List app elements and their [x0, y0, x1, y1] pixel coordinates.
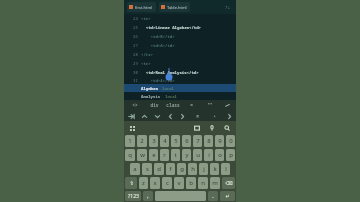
staticText: ▾ — [213, 113, 216, 119]
staticText: 7↓ — [225, 5, 231, 10]
button[interactable]: Algebra — [124, 84, 236, 92]
button[interactable]: <> — [127, 100, 143, 110]
button[interactable]: m — [210, 177, 220, 189]
button[interactable]: n — [198, 177, 208, 189]
button[interactable]: Shift — [125, 177, 137, 189]
button[interactable]: Period — [208, 191, 218, 201]
button[interactable]: Down — [151, 111, 163, 121]
staticText: <td>Real Analysis</td> — [141, 70, 199, 75]
staticText: </tr> — [141, 52, 153, 57]
staticText: 0 — [229, 137, 233, 145]
button[interactable]: v — [174, 177, 184, 189]
button[interactable]: Stickers — [192, 123, 201, 132]
staticText: 26 — [133, 34, 138, 39]
button[interactable]: t — [171, 149, 180, 161]
button[interactable]: 7 — [193, 135, 202, 147]
button[interactable]: Keyboard menu — [128, 124, 136, 132]
button[interactable]: 8 — [204, 135, 213, 147]
button[interactable]: More — [222, 1, 234, 13]
button[interactable]: a — [130, 163, 140, 175]
staticText: <tr> — [141, 61, 151, 66]
staticText: j — [203, 165, 205, 173]
staticText: ?123 — [128, 193, 139, 200]
staticText: Algebra — [141, 86, 158, 91]
button[interactable]: Right — [176, 111, 188, 121]
staticText: class — [166, 102, 180, 108]
button[interactable]: b — [186, 177, 196, 189]
button[interactable]: l — [221, 163, 230, 175]
button[interactable]: Undo — [221, 100, 233, 110]
button[interactable]: Table.html — [159, 2, 190, 12]
staticText: <td>Linear Algebra</td> — [141, 25, 201, 30]
staticText: s — [146, 165, 149, 173]
staticText: b — [189, 179, 193, 187]
staticText: r — [163, 151, 166, 159]
button[interactable]: q — [125, 149, 135, 161]
button[interactable]: = — [183, 100, 199, 110]
staticText: 3 — [152, 137, 156, 145]
staticText: g — [180, 165, 184, 173]
button[interactable]: o — [215, 149, 224, 161]
button[interactable]: Comma — [143, 191, 153, 201]
button[interactable]: s — [142, 163, 152, 175]
button[interactable]: c — [162, 177, 172, 189]
button[interactable]: z — [139, 177, 148, 189]
button[interactable]: 6 — [182, 135, 191, 147]
button[interactable]: Symbols — [125, 191, 141, 201]
button[interactable]: Tab — [125, 111, 137, 121]
staticText: div — [150, 102, 159, 108]
button[interactable]: "" — [202, 100, 218, 110]
staticText: 7 — [196, 137, 200, 145]
button[interactable]: More — [223, 111, 235, 121]
button[interactable]: f — [166, 163, 175, 175]
staticText: 25 — [133, 25, 138, 30]
staticText: Table.html — [167, 5, 187, 10]
button[interactable]: j — [199, 163, 208, 175]
button[interactable]: Voice input — [207, 123, 216, 132]
button[interactable]: e — [149, 149, 158, 161]
staticText: <td>8</td> — [141, 34, 175, 39]
button[interactable]: Backspace — [222, 177, 235, 189]
button[interactable]: 1 — [125, 135, 135, 147]
button[interactable]: h — [188, 163, 197, 175]
button[interactable]: p — [226, 149, 235, 161]
staticText: <> — [132, 102, 138, 108]
button[interactable]: Search — [222, 123, 231, 132]
button[interactable]: 4 — [160, 135, 169, 147]
button[interactable]: 5 — [171, 135, 180, 147]
button[interactable]: i — [204, 149, 213, 161]
staticText: 2 — [140, 137, 144, 145]
button[interactable]: g — [177, 163, 186, 175]
button[interactable]: class — [165, 100, 181, 110]
button[interactable]: Up — [138, 111, 150, 121]
button[interactable]: x — [150, 177, 160, 189]
button[interactable]: w — [137, 149, 147, 161]
button[interactable]: 9 — [215, 135, 224, 147]
staticText: d — [157, 165, 161, 173]
button[interactable]: ⌘ — [189, 111, 205, 121]
button[interactable]: d — [154, 163, 164, 175]
staticText: 31 — [133, 78, 138, 83]
staticText: . — [212, 193, 214, 200]
button[interactable]: k — [210, 163, 219, 175]
staticText: first.html — [135, 5, 153, 10]
button[interactable]: Analysis — [124, 92, 236, 100]
staticText: 29 — [133, 61, 138, 66]
button[interactable] — [155, 191, 206, 201]
button[interactable]: r — [160, 149, 169, 161]
button[interactable]: div — [146, 100, 162, 110]
button[interactable]: 0 — [226, 135, 235, 147]
button[interactable]: ▾ — [206, 111, 222, 121]
staticText: p — [229, 151, 233, 159]
button[interactable]: first.html — [127, 2, 156, 12]
button[interactable]: u — [193, 149, 202, 161]
staticText: m — [212, 179, 218, 187]
button[interactable]: 3 — [149, 135, 158, 147]
staticText: 30 — [133, 70, 138, 75]
button[interactable]: Left — [164, 111, 176, 121]
button[interactable]: 2 — [137, 135, 147, 147]
staticText: ⇧ — [129, 180, 134, 186]
button[interactable]: y — [182, 149, 191, 161]
button[interactable]: Enter — [220, 191, 235, 201]
